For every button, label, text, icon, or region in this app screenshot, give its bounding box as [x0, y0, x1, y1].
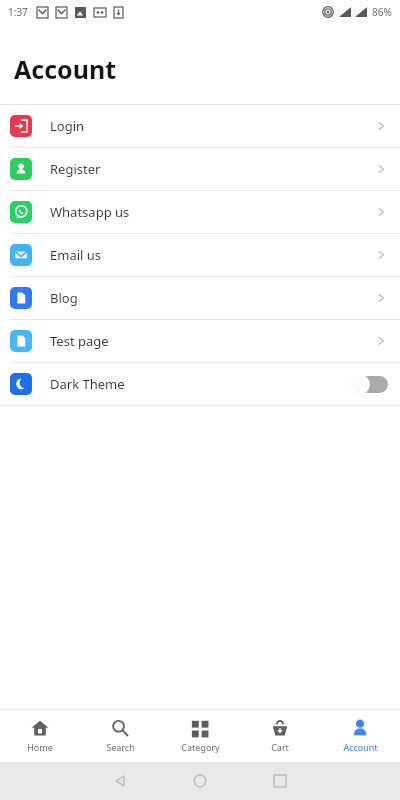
staticText: Email us: [50, 246, 102, 264]
staticText: Dark Theme: [50, 375, 125, 393]
staticText: 1:37: [8, 5, 28, 19]
button[interactable]: Home: [0, 710, 80, 762]
button[interactable]: Login: [0, 105, 400, 147]
staticText: Test page: [50, 332, 109, 350]
button[interactable]: Blog: [0, 277, 400, 319]
button[interactable]: Email us: [0, 234, 400, 276]
staticText: Account: [343, 741, 378, 753]
button[interactable]: Dark Theme: [0, 363, 400, 405]
button[interactable]: Account: [320, 710, 400, 762]
button[interactable]: Test page: [0, 320, 400, 362]
staticText: Register: [50, 160, 101, 178]
staticText: Cart: [271, 741, 289, 753]
button[interactable]: Whatsapp us: [0, 191, 400, 233]
staticText: 86%: [372, 5, 392, 19]
staticText: Home: [27, 741, 53, 753]
button[interactable]: Register: [0, 148, 400, 190]
button[interactable]: Home: [160, 762, 240, 800]
staticText: Whatsapp us: [50, 203, 130, 221]
button[interactable]: Recents: [240, 762, 320, 800]
button[interactable]: Category: [160, 710, 240, 762]
staticText: Blog: [50, 289, 78, 307]
button[interactable]: Search: [80, 710, 160, 762]
staticText: Account: [14, 52, 117, 86]
button[interactable]: Cart: [240, 710, 320, 762]
staticText: Category: [181, 741, 220, 753]
staticText: Login: [50, 117, 85, 135]
staticText: Search: [106, 741, 135, 753]
button[interactable]: Back: [80, 762, 160, 800]
